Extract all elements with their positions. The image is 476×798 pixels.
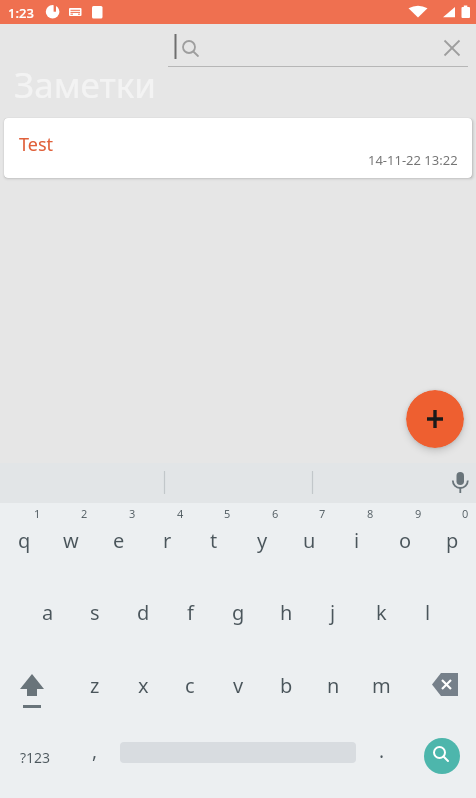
staticText: ?123 <box>20 748 51 767</box>
button[interactable]: v <box>215 652 261 718</box>
button[interactable]: r <box>144 510 190 570</box>
staticText: t <box>210 527 218 554</box>
button[interactable] <box>168 28 468 68</box>
staticText: y <box>257 527 268 554</box>
staticText: m <box>372 672 391 699</box>
staticText: Test <box>19 132 54 157</box>
staticText: v <box>233 672 244 699</box>
staticText: 1:23 <box>8 4 34 22</box>
button[interactable]: c <box>167 652 213 718</box>
staticText: 0 <box>462 506 469 521</box>
staticText: i <box>354 527 360 554</box>
staticText: j <box>330 599 336 626</box>
staticText: w <box>63 527 79 554</box>
staticText: 14-11-22 13:22 <box>368 151 458 169</box>
button[interactable]: s <box>72 579 118 645</box>
staticText: p <box>446 527 459 554</box>
staticText: 8 <box>367 506 374 521</box>
staticText: h <box>280 599 293 626</box>
button[interactable]: q <box>1 510 47 570</box>
staticText: a <box>42 599 54 626</box>
button[interactable]: n <box>310 652 356 718</box>
button[interactable]: . <box>360 723 404 779</box>
button[interactable]: i <box>334 510 380 570</box>
staticText: 2 <box>81 506 88 521</box>
staticText: g <box>232 599 245 626</box>
button[interactable]: u <box>286 510 332 570</box>
staticText: 4 <box>177 506 184 521</box>
button[interactable]: e <box>96 510 142 570</box>
staticText: r <box>163 527 172 554</box>
button[interactable]: z <box>72 652 118 718</box>
staticText: l <box>425 599 431 626</box>
staticText: , <box>92 738 98 764</box>
button[interactable]: y <box>239 510 285 570</box>
staticText: Заметки <box>14 61 157 109</box>
staticText: 3 <box>129 506 136 521</box>
button[interactable] <box>4 652 60 718</box>
staticText: x <box>138 672 149 699</box>
staticText: 7 <box>319 506 326 521</box>
staticText: q <box>18 527 31 554</box>
button[interactable]: j <box>310 579 356 645</box>
staticText: n <box>327 672 340 699</box>
button[interactable]: b <box>263 652 309 718</box>
staticText: u <box>303 527 316 554</box>
staticText: s <box>90 599 100 626</box>
staticText: 9 <box>415 506 422 521</box>
button[interactable]: d <box>120 579 166 645</box>
button[interactable] <box>418 652 474 718</box>
button[interactable] <box>406 390 464 448</box>
button[interactable]: k <box>358 579 404 645</box>
button[interactable]: t <box>191 510 237 570</box>
button[interactable]: m <box>358 652 404 718</box>
button[interactable]: o <box>382 510 428 570</box>
button[interactable]: f <box>167 579 213 645</box>
button[interactable]: g <box>215 579 261 645</box>
button[interactable]: a <box>25 579 71 645</box>
staticText: 1 <box>34 506 41 521</box>
button[interactable]: l <box>405 579 451 645</box>
staticText: e <box>113 527 125 554</box>
button[interactable]: p <box>429 510 475 570</box>
button[interactable] <box>424 738 460 774</box>
staticText: k <box>376 599 387 626</box>
button[interactable]: x <box>120 652 166 718</box>
staticText: z <box>90 672 100 699</box>
button[interactable]: w <box>48 510 94 570</box>
staticText: 5 <box>224 506 231 521</box>
staticText: o <box>399 527 412 554</box>
staticText: f <box>187 599 194 626</box>
button[interactable]: ?123 <box>5 724 65 790</box>
staticText: c <box>185 672 195 699</box>
staticText: 6 <box>272 506 279 521</box>
button[interactable]: Test <box>4 118 472 178</box>
button[interactable]: h <box>263 579 309 645</box>
button[interactable]: , <box>73 723 117 779</box>
staticText: . <box>379 738 385 764</box>
staticText: b <box>280 672 293 699</box>
staticText: d <box>137 599 150 626</box>
